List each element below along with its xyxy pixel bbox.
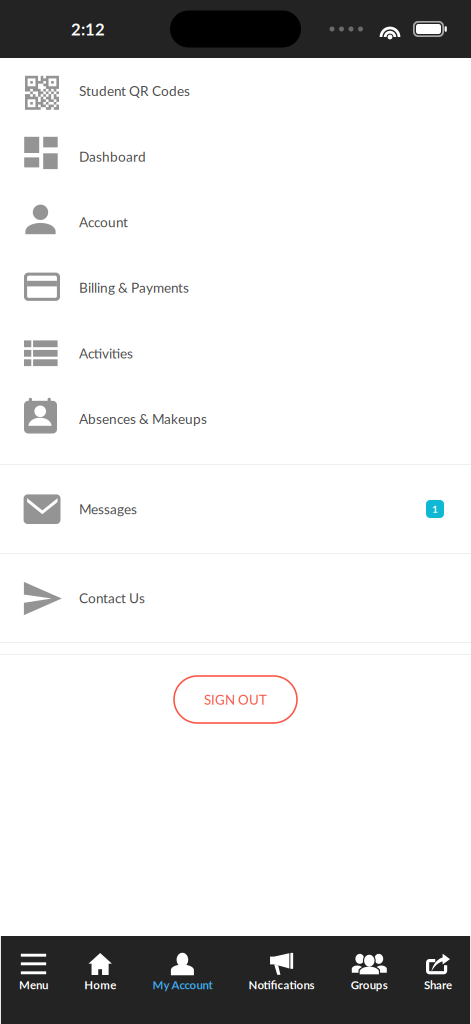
button[interactable]: My Account [134, 936, 230, 1024]
button[interactable]: Notifications [230, 936, 333, 1024]
button[interactable]: Account [0, 189, 471, 255]
staticText: Absences & Makeups [79, 411, 207, 427]
button[interactable]: Contact Us [0, 554, 471, 642]
staticText: 2:12 [71, 19, 105, 39]
staticText: Home [84, 978, 116, 992]
staticText: 1 [432, 503, 438, 515]
staticText: Dashboard [79, 148, 146, 164]
staticText: Student QR Codes [79, 83, 190, 99]
staticText: Messages [79, 501, 137, 517]
staticText: My Account [152, 978, 212, 992]
button[interactable]: Groups [333, 936, 406, 1024]
button[interactable]: Home [66, 936, 134, 1024]
staticText: Activities [79, 345, 133, 361]
staticText: SIGN OUT [204, 691, 267, 707]
button[interactable]: Menu [1, 936, 66, 1024]
staticText: Share [424, 978, 452, 992]
staticText: Billing & Payments [79, 279, 189, 296]
button[interactable]: SIGN OUT [174, 676, 297, 723]
button[interactable]: Messages [0, 465, 471, 553]
button[interactable]: Dashboard [0, 124, 471, 189]
button[interactable]: Activities [0, 320, 471, 386]
button[interactable]: Absences & Makeups [0, 386, 471, 452]
button[interactable]: Share [406, 936, 470, 1024]
staticText: Notifications [249, 978, 315, 992]
staticText: Account [79, 214, 128, 230]
staticText: Groups [351, 978, 388, 992]
button[interactable]: Student QR Codes [0, 58, 471, 124]
staticText: Menu [19, 978, 48, 992]
staticText: Contact Us [79, 590, 145, 606]
button[interactable]: Billing & Payments [0, 255, 471, 320]
